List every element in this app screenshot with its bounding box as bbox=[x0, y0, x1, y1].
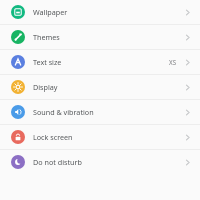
staticText: XS bbox=[169, 58, 177, 66]
button[interactable]: Display bbox=[0, 75, 200, 99]
staticText: Text size bbox=[33, 57, 62, 67]
staticText: Do not disturb bbox=[33, 157, 82, 167]
staticText: Themes bbox=[33, 32, 60, 42]
staticText: Display bbox=[33, 82, 58, 92]
button[interactable]: Do not disturb bbox=[0, 150, 200, 174]
other: Themes bbox=[184, 33, 193, 42]
staticText: Sound & vibration bbox=[33, 107, 94, 117]
other: Lock screen bbox=[184, 133, 193, 142]
button[interactable]: Text size bbox=[0, 50, 200, 74]
other: Text size bbox=[184, 58, 193, 67]
other: Do not disturb bbox=[184, 158, 193, 167]
staticText: Wallpaper bbox=[33, 7, 68, 17]
other: Display bbox=[184, 83, 193, 92]
other: Wallpaper bbox=[184, 8, 193, 17]
other: Sound & vibration bbox=[184, 108, 193, 117]
staticText: Lock screen bbox=[33, 132, 73, 142]
button[interactable]: Themes bbox=[0, 25, 200, 49]
button[interactable]: Sound & vibration bbox=[0, 100, 200, 124]
button[interactable]: Lock screen bbox=[0, 125, 200, 149]
button[interactable]: Wallpaper bbox=[0, 0, 200, 24]
